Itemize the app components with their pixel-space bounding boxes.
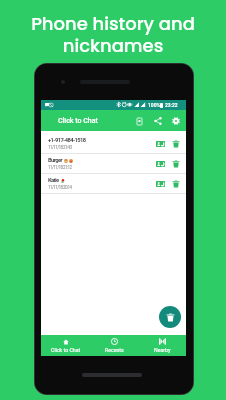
staticText: 11/11/18 21:43	[48, 145, 72, 150]
staticText: Recents	[105, 347, 124, 353]
button[interactable]: Contact	[154, 177, 167, 190]
button[interactable]: Recents	[90, 335, 138, 356]
staticText: Katie	[48, 177, 59, 184]
button[interactable]: Burger	[41, 154, 186, 174]
staticText: Burger	[48, 157, 62, 164]
staticText: Click to Chat	[58, 117, 98, 125]
button[interactable]: Delete	[169, 157, 182, 170]
button[interactable]: +1-917-484-1518	[41, 134, 186, 154]
button[interactable]: Contact	[154, 157, 167, 170]
staticText: 11/11/18 21:12	[48, 165, 72, 170]
button[interactable]: Device	[132, 114, 146, 128]
staticText: Click to Chat	[51, 347, 81, 353]
button[interactable]: Katie	[41, 174, 186, 194]
button[interactable]: Click to Chat	[41, 335, 90, 356]
button[interactable]: Delete	[169, 177, 182, 190]
button[interactable]: Share	[151, 114, 165, 128]
staticText: Phone history and nicknames	[0, 11, 226, 59]
button[interactable]: Delete	[169, 137, 182, 150]
button[interactable]: Delete all	[159, 306, 181, 328]
staticText: 11/11/18 20:14	[48, 185, 72, 190]
staticText: 100%	[148, 102, 161, 108]
button[interactable]: Contact	[154, 137, 167, 150]
button[interactable]: Settings	[169, 114, 183, 128]
staticText: 23:22	[165, 102, 178, 108]
button[interactable]: Nearby	[138, 335, 186, 356]
staticText: +1-917-484-1518	[48, 137, 86, 144]
staticText: Nearby	[154, 347, 171, 353]
